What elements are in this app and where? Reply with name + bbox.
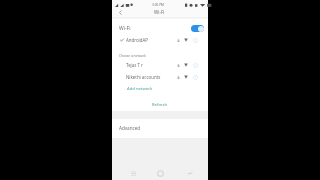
- button[interactable]: Wi-Fi: [112, 21, 208, 35]
- button[interactable]: Nikethi accounts: [112, 71, 208, 83]
- button[interactable]: Back: [183, 167, 195, 179]
- button[interactable]: Advanced: [112, 121, 208, 135]
- staticText: Add network: [127, 86, 153, 92]
- staticText: Advanced: [119, 125, 141, 131]
- staticText: Refresh: [152, 102, 168, 108]
- staticText: Tejas T r: [126, 62, 143, 68]
- staticText: Nikethi accounts: [126, 74, 161, 80]
- button[interactable]: Network details: [192, 37, 198, 43]
- staticText: Wi-Fi: [119, 25, 131, 32]
- button[interactable]: Home: [154, 167, 166, 179]
- button[interactable]: AndroidAP: [112, 34, 208, 46]
- staticText: 3:06 PM: [152, 3, 164, 7]
- button[interactable]: Refresh: [112, 99, 208, 110]
- button[interactable]: Network details: [192, 62, 198, 68]
- button[interactable]: Recent apps: [127, 167, 139, 179]
- button[interactable]: Add network: [112, 83, 208, 94]
- button[interactable]: Tejas T r: [112, 59, 208, 71]
- staticText: Wi-Fi: [154, 9, 165, 15]
- button[interactable]: Network details: [192, 74, 198, 80]
- staticText: AndroidAP: [126, 37, 148, 43]
- button[interactable]: Back: [116, 8, 125, 17]
- staticText: Choose a network: [119, 54, 146, 58]
